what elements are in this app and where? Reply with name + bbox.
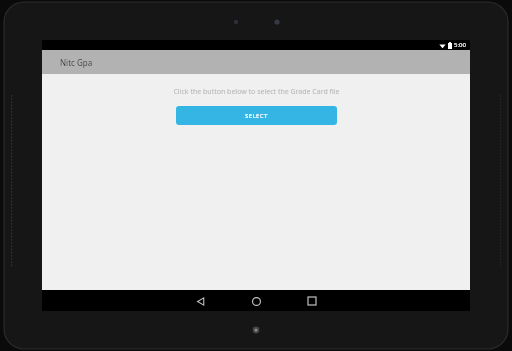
staticText: Nitc Gpa bbox=[60, 57, 93, 68]
staticText: Click the button below to select the Gra… bbox=[173, 87, 340, 97]
staticText: SELECT bbox=[245, 112, 268, 120]
button[interactable]: Recent apps bbox=[302, 291, 322, 311]
button[interactable]: SELECT bbox=[176, 106, 337, 125]
staticText: 5:00 bbox=[454, 41, 466, 49]
button[interactable]: Back bbox=[190, 291, 210, 311]
button[interactable]: Home bbox=[246, 291, 266, 311]
